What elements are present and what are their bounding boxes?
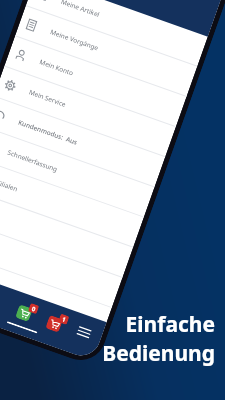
staticText: Schnellerfassung [6, 148, 59, 174]
staticText: Bedienung [102, 339, 215, 368]
button[interactable]: Mein Service [0, 66, 176, 157]
button[interactable]: Filialen [0, 157, 144, 248]
button[interactable]: Schnellerfassung [0, 127, 154, 218]
button[interactable]: Kundenmodus: Aus [0, 96, 165, 187]
staticText: Mein Konto [38, 57, 75, 78]
button[interactable]: Meine Vorgänge [15, 6, 197, 97]
button[interactable]: Menü [73, 321, 96, 344]
staticText: Kundenmodus: Aus [17, 118, 79, 147]
button[interactable]: Warenkorb 0 Artikel [15, 299, 39, 324]
staticText: 0 [31, 305, 37, 314]
staticText: Mein Service [28, 87, 67, 109]
staticText: Meine Vorgänge [49, 27, 100, 53]
staticText: Meine Artikel [60, 0, 101, 19]
staticText: 1 [61, 315, 67, 324]
staticText: Einfache [125, 310, 215, 339]
staticText: Filialen [0, 178, 19, 194]
button[interactable]: Warenkorb 1 Artikel [45, 310, 69, 334]
button[interactable]: Mein Konto [4, 36, 186, 127]
button[interactable]: Meine Artikel [26, 0, 208, 67]
